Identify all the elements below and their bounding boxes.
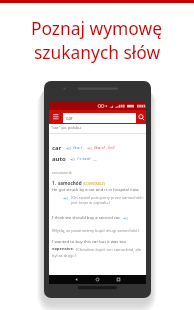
staticText: (Chciałem kupić ten samochód, ale — [76, 247, 141, 252]
button[interactable]: Search — [136, 110, 146, 124]
staticText: — — [93, 157, 97, 162]
staticText: 1. — [52, 180, 58, 186]
staticText: car — [66, 115, 73, 121]
staticText: szukanych słów — [34, 40, 161, 64]
button[interactable]: Recents — [114, 275, 123, 284]
staticText: (Myślę, że powinniśmy kupić drugi samoch… — [52, 228, 140, 233]
staticText: [COUNTABLE] — [83, 181, 105, 186]
staticText: był za drogi.) — [52, 253, 76, 258]
button[interactable]: Play pronunciation — [87, 146, 92, 151]
button[interactable]: Back — [72, 275, 81, 284]
staticText: I wanted to buy this car but it was too — [52, 239, 127, 245]
staticText: Poznaj wymowę — [31, 16, 163, 40]
staticText: samochód — [58, 180, 83, 186]
staticText: /kɑː/ — [73, 145, 83, 151]
staticText: rzeczownik — [52, 170, 72, 175]
button[interactable]: Play pronunciation — [66, 146, 71, 151]
staticText: (On został potrącony przez samochód i je… — [71, 195, 145, 205]
button[interactable]: Play pronunciation — [63, 196, 68, 201]
button[interactable]: Play pronunciation — [123, 216, 128, 221]
button[interactable]: Menu — [51, 110, 60, 124]
staticText: /kɑːr/ — [94, 145, 106, 151]
staticText: auto — [52, 155, 66, 163]
staticText: He got struck by a car and is in hospita… — [52, 187, 140, 193]
staticText: car — [52, 144, 62, 152]
staticText: expensive. — [52, 246, 76, 252]
button[interactable]: Home — [93, 275, 102, 284]
button[interactable]: Play pronunciation — [70, 157, 75, 162]
staticText: "car" po polsku — [51, 125, 81, 131]
button[interactable]: car — [63, 113, 136, 123]
staticText: AmE — [108, 146, 115, 150]
staticText: /ˈɔːtəʊ/ — [77, 156, 91, 162]
staticText: I think we should buy a second car. — [52, 215, 121, 221]
